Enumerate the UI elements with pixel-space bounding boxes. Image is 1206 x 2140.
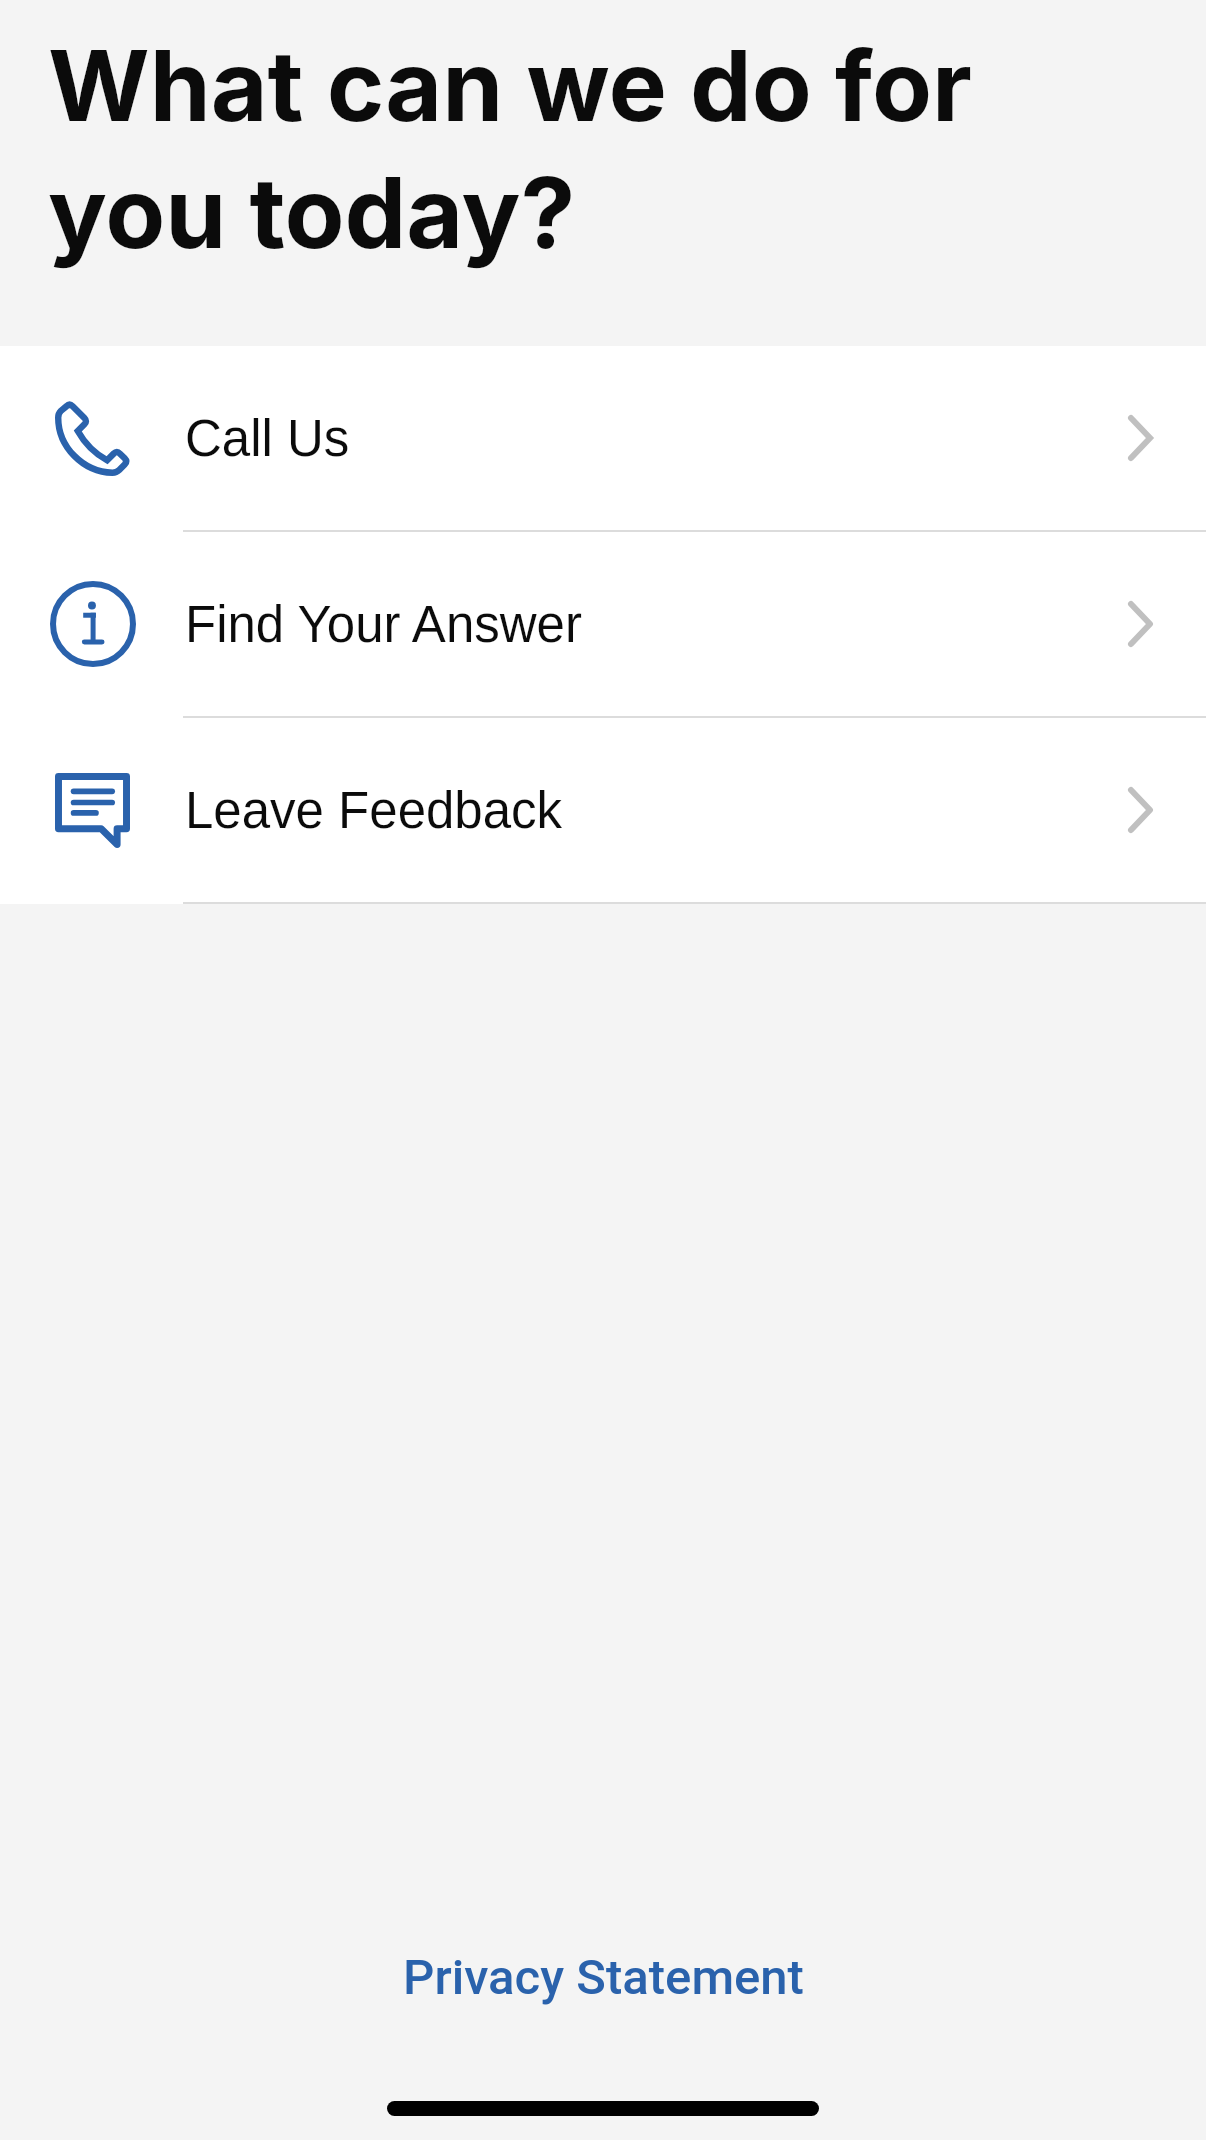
other: Open (1128, 415, 1153, 461)
staticText: Call Us (185, 410, 350, 467)
staticText: Privacy Statement (403, 1949, 804, 2006)
button[interactable]: Find Your Answer (0, 532, 1206, 716)
staticText: Find Your Answer (185, 596, 582, 653)
button[interactable]: Call Us (0, 346, 1206, 530)
other: Open (1128, 787, 1153, 833)
staticText: Leave Feedback (185, 782, 563, 839)
other: Open (1128, 601, 1153, 647)
button[interactable]: Leave Feedback (0, 718, 1206, 902)
staticText: What can we do for you today? (48, 26, 1076, 271)
button[interactable]: Privacy Statement (379, 1935, 828, 2020)
